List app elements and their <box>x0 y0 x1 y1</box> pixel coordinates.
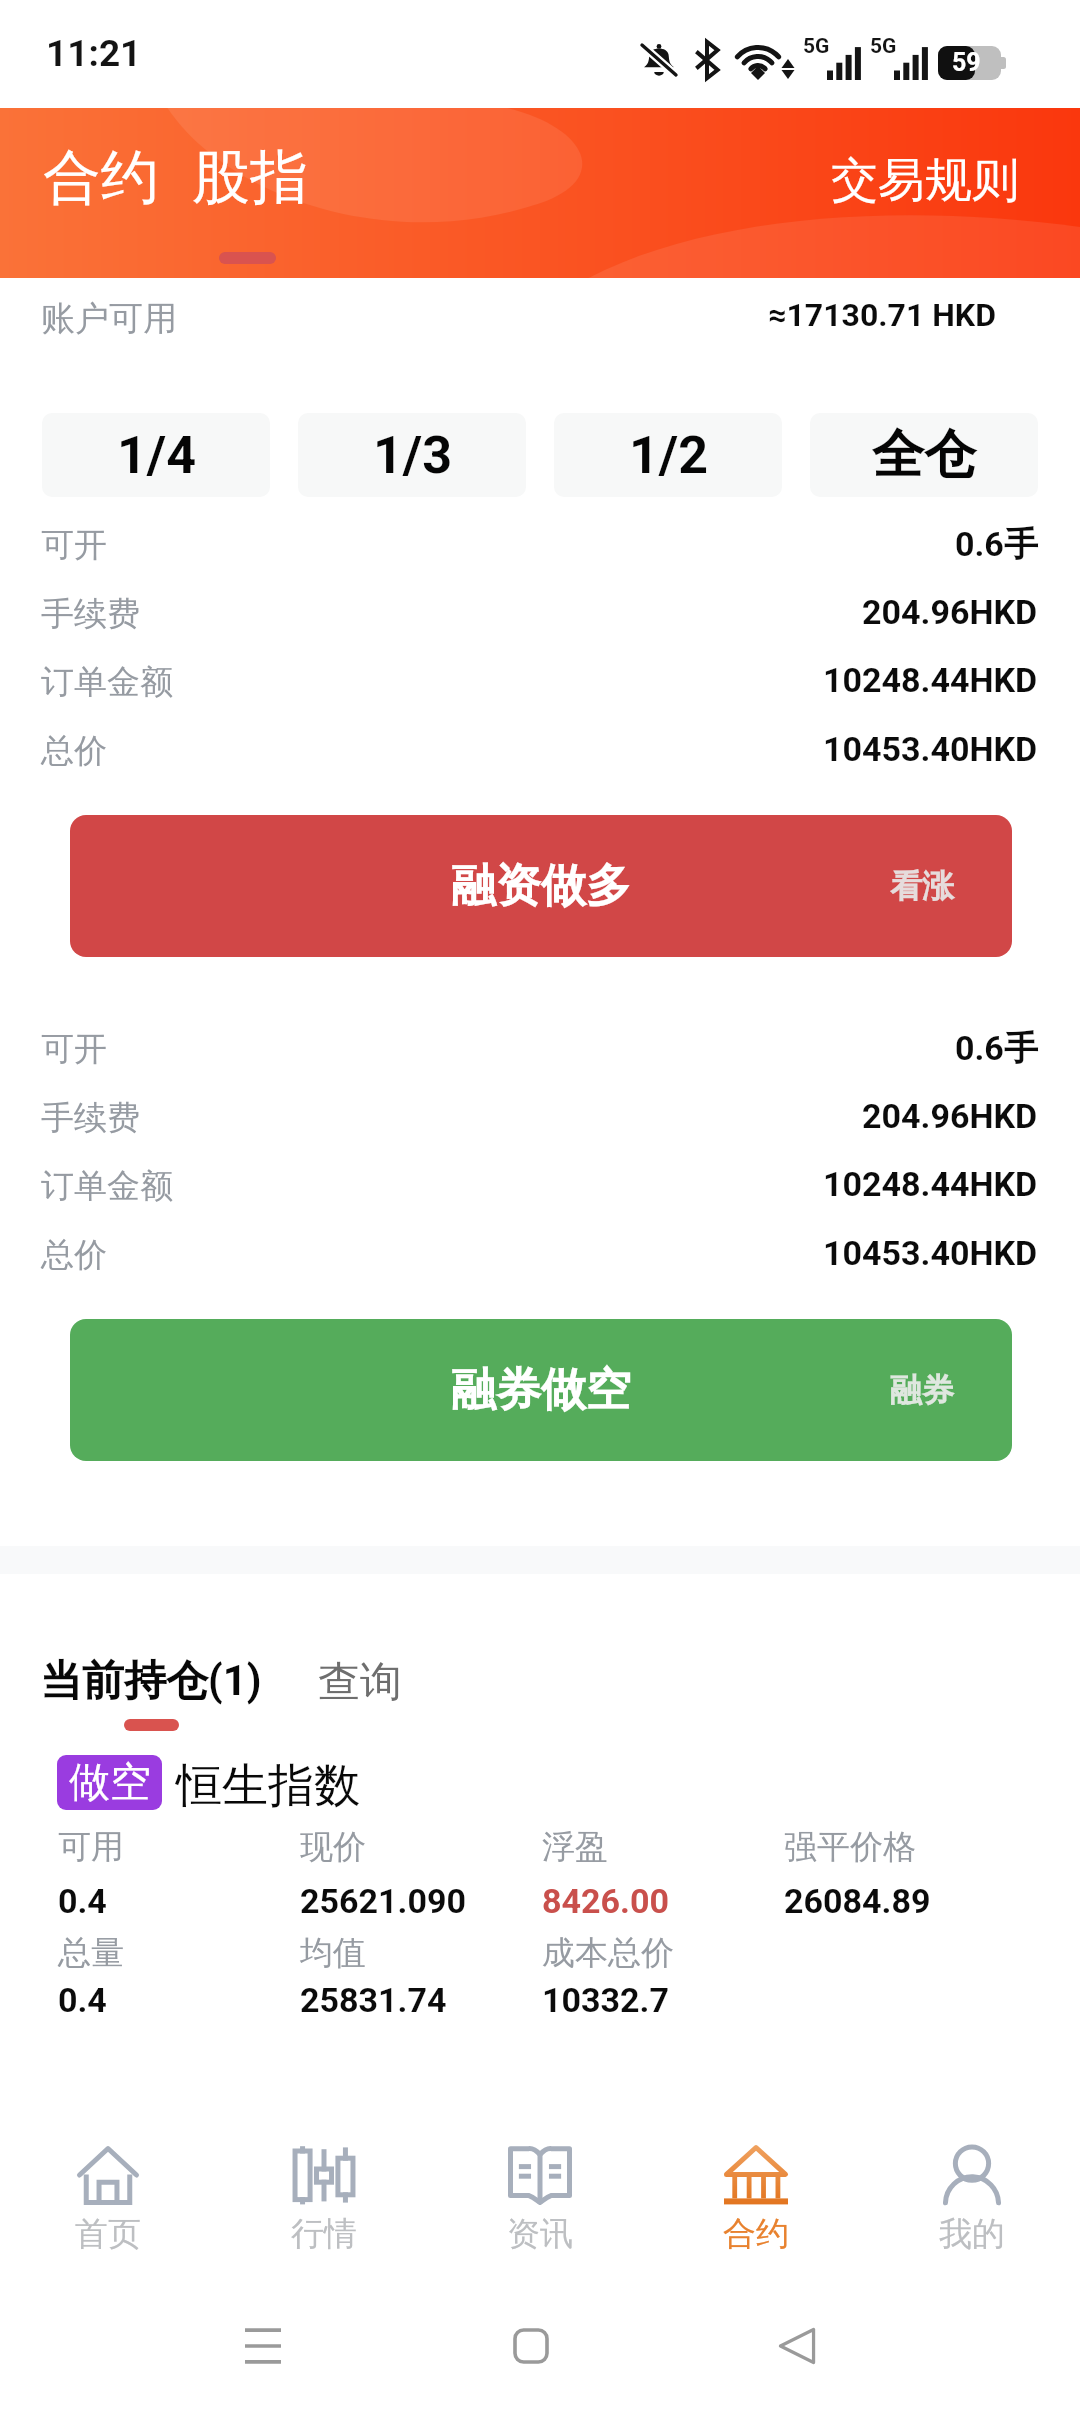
staticText: 现价 <box>300 1826 366 1868</box>
button[interactable]: 首页 <box>0 2132 216 2272</box>
button[interactable]: 合约 <box>43 141 159 214</box>
staticText: 25831.74 <box>300 1980 447 2020</box>
button[interactable]: 交易规则 <box>831 151 1019 210</box>
button[interactable]: 我的 <box>864 2132 1080 2272</box>
button[interactable]: Recent apps <box>209 2294 317 2398</box>
staticText: 1/2 <box>629 425 708 486</box>
staticText: 行情 <box>291 2213 357 2255</box>
staticText: 手续费 <box>41 593 140 635</box>
staticText: 8426.00 <box>542 1881 669 1921</box>
staticText: 浮盈 <box>542 1826 608 1868</box>
staticText: 融资做多 <box>451 858 631 915</box>
staticText: 25621.090 <box>300 1881 466 1921</box>
button[interactable]: 行情 <box>216 2132 432 2272</box>
staticText: 10248.44HKD <box>823 1164 1038 1204</box>
staticText: 总量 <box>58 1932 124 1974</box>
staticText: 10453.40HKD <box>823 1233 1038 1273</box>
staticText: 订单金额 <box>41 1165 173 1207</box>
staticText: 我的 <box>939 2213 1005 2255</box>
staticText: 成本总价 <box>542 1932 674 1974</box>
staticText: 融券 <box>890 1370 954 1410</box>
staticText: 10453.40HKD <box>823 729 1038 769</box>
staticText: 0.6手 <box>955 1027 1038 1070</box>
staticText: 204.96HKD <box>862 1096 1038 1136</box>
staticText: 11:21 <box>46 32 142 75</box>
staticText: 204.96HKD <box>862 592 1038 632</box>
staticText: 1/4 <box>117 425 196 486</box>
staticText: 总价 <box>41 730 107 772</box>
button[interactable]: 当前持仓(1) <box>40 1655 262 1708</box>
button[interactable]: Home <box>477 2294 585 2398</box>
staticText: 全仓 <box>872 422 976 488</box>
staticText: ≈17130.71 HKD <box>768 296 996 334</box>
button[interactable]: 查询 <box>318 1656 402 1709</box>
staticText: 可开 <box>41 1028 107 1070</box>
button[interactable]: 1/3 <box>298 413 526 497</box>
staticText: 订单金额 <box>41 661 173 703</box>
staticText: 10332.7 <box>542 1980 669 2020</box>
staticText: 看涨 <box>890 866 954 906</box>
staticText: 可开 <box>41 524 107 566</box>
staticText: 5G <box>803 34 830 59</box>
staticText: 做空 <box>69 1757 151 1809</box>
button[interactable]: 合约 <box>648 2132 864 2272</box>
staticText: 均值 <box>300 1932 366 1974</box>
staticText: 5G <box>870 34 897 59</box>
button[interactable]: 融券做空 <box>70 1319 1012 1461</box>
staticText: 可用 <box>58 1826 124 1868</box>
staticText: 手续费 <box>41 1097 140 1139</box>
button[interactable]: 1/2 <box>554 413 782 497</box>
staticText: 26084.89 <box>784 1881 931 1921</box>
staticText: 0.6手 <box>955 523 1038 566</box>
staticText: 0.4 <box>58 1980 107 2020</box>
staticText: 合约 <box>723 2213 789 2255</box>
staticText: 融券做空 <box>451 1362 631 1419</box>
button[interactable]: 股指 <box>192 141 308 214</box>
staticText: 恒生指数 <box>176 1757 360 1815</box>
button[interactable]: 全仓 <box>810 413 1038 497</box>
staticText: 10248.44HKD <box>823 660 1038 700</box>
button[interactable]: Back <box>743 2294 851 2398</box>
staticText: 总价 <box>41 1234 107 1276</box>
button[interactable]: 融资做多 <box>70 815 1012 957</box>
staticText: 59 <box>952 48 981 77</box>
button[interactable]: 资讯 <box>432 2132 648 2272</box>
staticText: 强平价格 <box>784 1826 916 1868</box>
button[interactable]: 1/4 <box>42 413 270 497</box>
staticText: 账户可用 <box>41 297 177 340</box>
staticText: 1/3 <box>373 425 452 486</box>
staticText: 0.4 <box>58 1881 107 1921</box>
staticText: 首页 <box>75 2213 141 2255</box>
staticText: 资讯 <box>507 2213 573 2255</box>
